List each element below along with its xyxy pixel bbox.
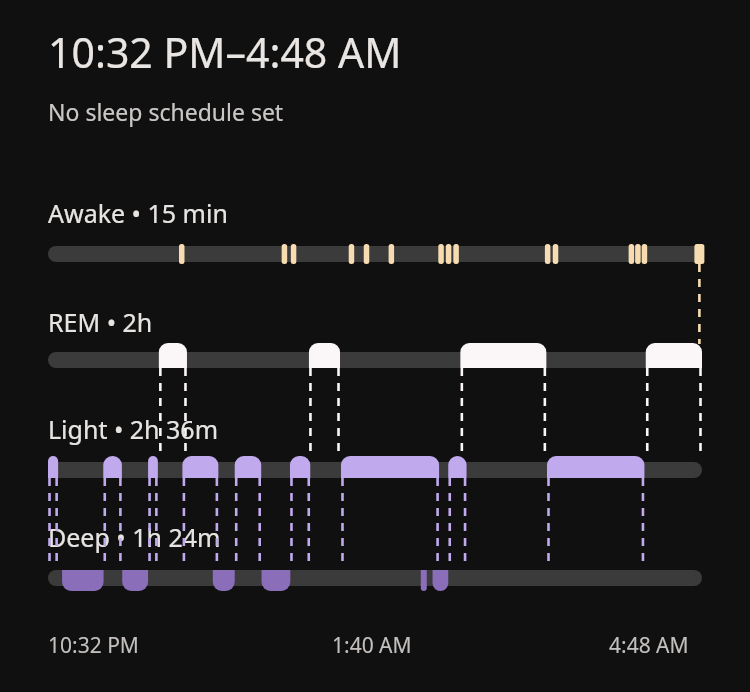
staticText: Deep • 1h 24m — [48, 520, 221, 554]
staticText: 4:48 AM — [609, 631, 689, 660]
button[interactable]: Light • 2h 36m — [48, 412, 219, 446]
staticText: REM • 2h — [48, 305, 153, 339]
staticText: 1:40 AM — [332, 631, 412, 660]
staticText: No sleep schedule set — [48, 96, 284, 127]
button[interactable]: 10:32 PM–4:48 AM — [48, 24, 402, 80]
staticText: 10:32 PM–4:48 AM — [48, 24, 402, 80]
button[interactable]: Awake • 15 min — [48, 196, 228, 230]
staticText: Light • 2h 36m — [48, 412, 219, 446]
staticText: Awake • 15 min — [48, 196, 228, 230]
button[interactable]: REM • 2h — [48, 305, 153, 339]
button[interactable]: Deep • 1h 24m — [48, 520, 221, 554]
staticText: 10:32 PM — [48, 631, 139, 660]
